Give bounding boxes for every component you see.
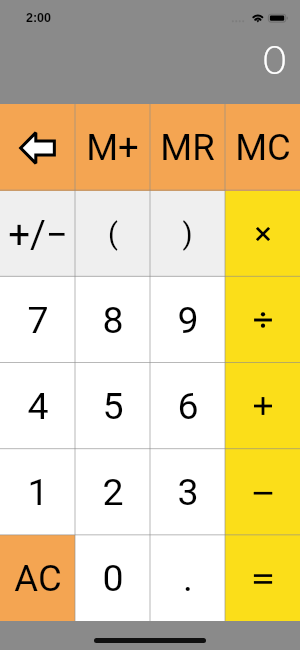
button[interactable]: 3 bbox=[150, 449, 225, 535]
button[interactable]: 4 bbox=[0, 363, 75, 449]
button[interactable]: 1 bbox=[0, 449, 75, 535]
button[interactable]: 9 bbox=[150, 277, 225, 363]
button[interactable]: Equals bbox=[225, 535, 300, 621]
staticText: MC bbox=[235, 126, 291, 169]
button[interactable]: Plus bbox=[225, 363, 300, 449]
button[interactable]: 2 bbox=[75, 449, 150, 535]
staticText: 5 bbox=[102, 384, 124, 428]
staticText: 7 bbox=[27, 298, 49, 342]
staticText: MR bbox=[160, 126, 215, 169]
staticText: 8 bbox=[102, 298, 124, 342]
staticText: 0 bbox=[102, 556, 124, 600]
button[interactable]: Backspace bbox=[0, 104, 75, 191]
button[interactable]: 5 bbox=[75, 363, 150, 449]
button[interactable]: ( bbox=[75, 191, 150, 277]
staticText: 1 bbox=[27, 470, 49, 514]
staticText: 3 bbox=[177, 470, 199, 514]
button[interactable]: Multiply bbox=[225, 191, 300, 277]
button[interactable]: Minus bbox=[225, 449, 300, 535]
staticText: 9 bbox=[177, 298, 199, 342]
button[interactable]: 8 bbox=[75, 277, 150, 363]
staticText: 2 bbox=[102, 470, 124, 514]
button[interactable]: 7 bbox=[0, 277, 75, 363]
staticText: M+ bbox=[86, 126, 139, 169]
staticText: 4 bbox=[27, 384, 49, 428]
staticText: 2:00 bbox=[26, 11, 52, 25]
button[interactable]: 6 bbox=[150, 363, 225, 449]
staticText: 0 bbox=[263, 35, 287, 83]
staticText: +/− bbox=[8, 212, 68, 257]
staticText: AC bbox=[14, 557, 62, 600]
staticText: 6 bbox=[177, 384, 199, 428]
button[interactable]: . bbox=[150, 535, 225, 621]
button[interactable]: MC bbox=[225, 104, 300, 191]
staticText: ) bbox=[182, 217, 193, 251]
button[interactable]: +/− bbox=[0, 191, 75, 277]
button[interactable]: MR bbox=[150, 104, 225, 191]
button[interactable]: 0 bbox=[75, 535, 150, 621]
button[interactable]: Divide bbox=[225, 277, 300, 363]
staticText: ( bbox=[108, 217, 118, 251]
button[interactable]: M+ bbox=[75, 104, 150, 191]
staticText: . bbox=[183, 556, 193, 600]
button[interactable]: AC bbox=[0, 535, 75, 621]
button[interactable]: ) bbox=[150, 191, 225, 277]
